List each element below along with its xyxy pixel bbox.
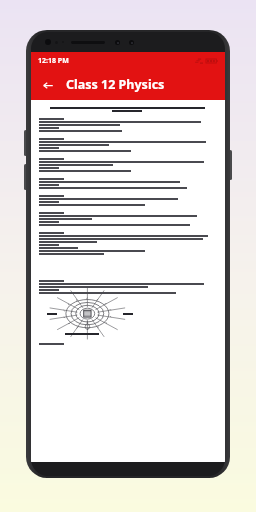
staticText: 12:18 PM	[38, 56, 69, 66]
button[interactable]: Back	[36, 73, 60, 97]
staticText: Class 12 Physics Important…	[66, 76, 225, 93]
